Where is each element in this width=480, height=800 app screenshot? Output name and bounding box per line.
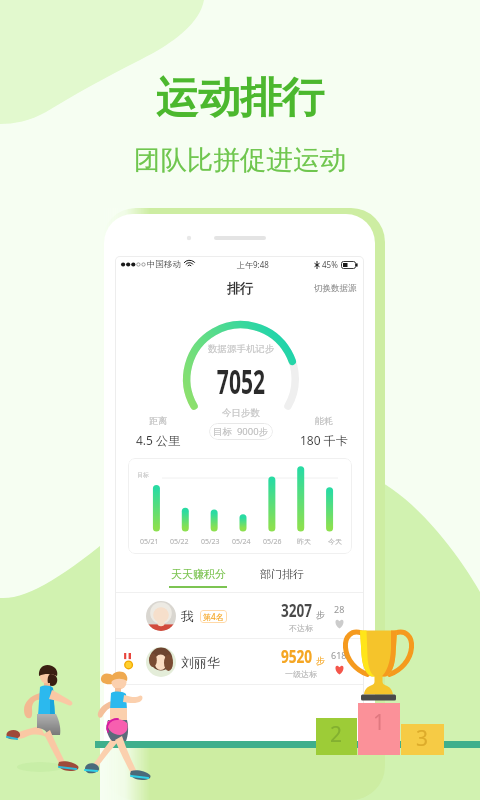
button[interactable]: 我	[115, 593, 364, 638]
staticText: 05/26	[263, 537, 282, 547]
button[interactable]: 目标 9000步	[209, 423, 273, 440]
staticText: 第4名	[203, 611, 224, 622]
staticText: 数据源手机记步	[208, 343, 275, 355]
staticText: 2	[330, 720, 343, 749]
staticText: 28	[334, 603, 345, 615]
staticText: 昨天	[297, 537, 311, 546]
staticText: 能耗	[315, 415, 333, 426]
staticText: 180 千卡	[300, 432, 348, 448]
staticText: 距离	[149, 415, 167, 426]
staticText: 天天赚积分	[171, 567, 226, 581]
staticText: 9520	[281, 645, 312, 668]
staticText: 中国移动	[147, 259, 181, 270]
staticText: 今日步数	[222, 407, 260, 419]
staticText: 团队比拼促进运动	[134, 143, 346, 176]
staticText: 不达标	[289, 623, 313, 633]
staticText: 运动排行	[156, 72, 324, 125]
staticText: 步	[316, 609, 325, 620]
staticText: 618	[331, 649, 347, 661]
staticText: 步	[316, 655, 325, 666]
staticText: 05/22	[170, 537, 189, 547]
staticText: 4.5 公里	[136, 432, 181, 448]
staticText: 今天	[328, 537, 342, 546]
staticText: 目标 9000步	[213, 425, 269, 438]
staticText: 切换数据源	[314, 283, 357, 294]
staticText: 05/21	[140, 537, 159, 547]
staticText: 排行	[227, 280, 253, 296]
staticText: 05/24	[232, 537, 251, 547]
staticText: 1	[373, 708, 386, 737]
staticText: 3207	[281, 599, 312, 622]
staticText: 一级达标	[285, 669, 317, 679]
staticText: 7052	[217, 358, 265, 404]
staticText: 05/23	[201, 537, 220, 547]
staticText: 3	[416, 724, 429, 753]
button[interactable]: 刘丽华	[115, 639, 364, 684]
staticText: 我	[181, 608, 194, 624]
button[interactable]: 切换数据源	[307, 279, 364, 298]
staticText: 目标	[137, 471, 149, 479]
staticText: 上午9:48	[237, 259, 269, 270]
staticText: 45%	[322, 259, 338, 270]
button[interactable]: 天天赚积分	[158, 567, 238, 592]
button[interactable]: 部门排行	[242, 567, 322, 592]
staticText: 部门排行	[260, 567, 304, 581]
staticText: 刘丽华	[181, 654, 220, 670]
